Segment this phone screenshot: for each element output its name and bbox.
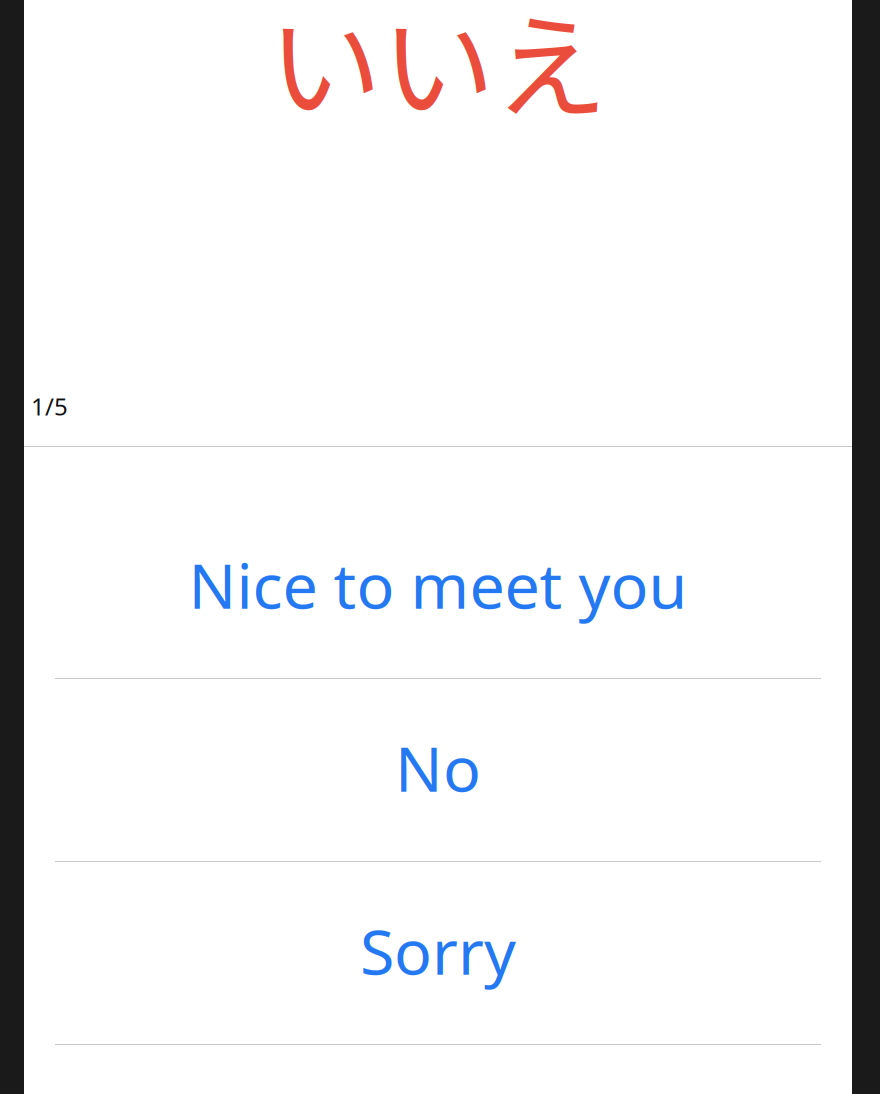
button[interactable]: Nice to meet you: [24, 496, 852, 678]
button[interactable]: Sorry: [24, 862, 852, 1044]
button[interactable]: No: [24, 679, 852, 861]
staticText: Nice to meet you: [188, 543, 687, 626]
staticText: いいえ: [268, 0, 607, 141]
staticText: 1/5: [31, 390, 68, 422]
staticText: No: [395, 726, 481, 809]
staticText: Sorry: [360, 909, 516, 992]
